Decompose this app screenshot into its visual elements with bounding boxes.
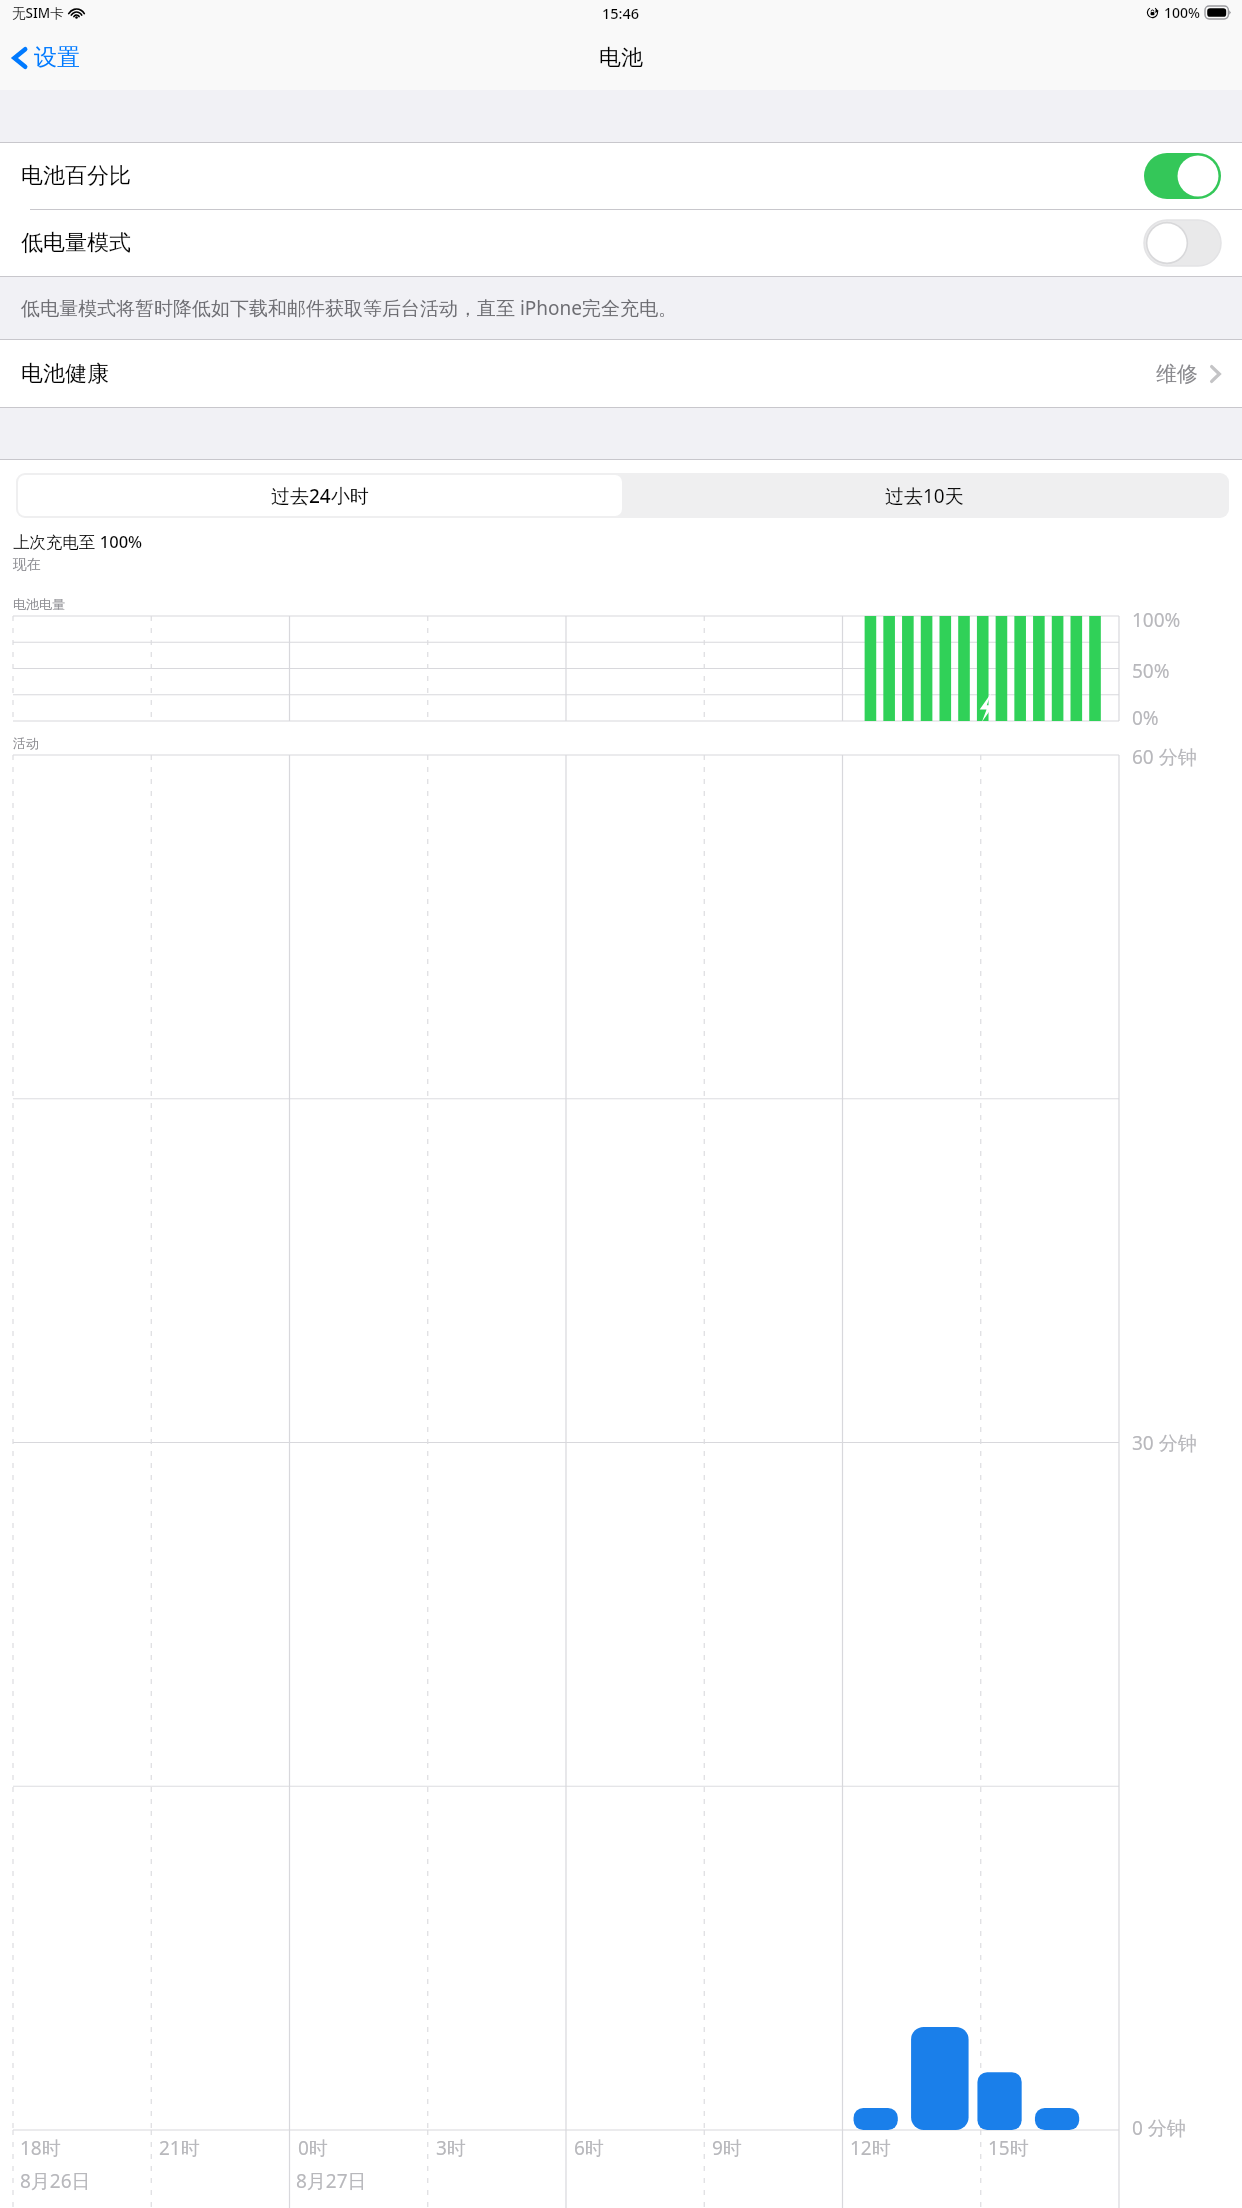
staticText: 12时 [850, 2135, 891, 2161]
staticText: 0 分钟 [1132, 2115, 1186, 2141]
staticText: 100% [1164, 3, 1200, 22]
staticText: 活动 [13, 735, 39, 751]
staticText: 100% [1132, 607, 1181, 633]
button[interactable]: 低电量模式 [0, 210, 1242, 276]
button[interactable]: 设置 [0, 37, 94, 78]
staticText: 低电量模式 [21, 229, 1144, 257]
staticText: 电池电量 [13, 596, 65, 612]
staticText: 30 分钟 [1132, 1430, 1197, 1456]
staticText: 设置 [34, 43, 80, 72]
staticText: 上次充电至 100% [13, 530, 143, 553]
staticText: 0时 [298, 2135, 328, 2161]
staticText: 维修 [1156, 361, 1198, 387]
staticText: 过去10天 [885, 483, 964, 509]
staticText: 低电量模式将暂时降低如下载和邮件获取等后台活动，直至 iPhone完全充电。 [21, 295, 678, 321]
staticText: 60 分钟 [1132, 744, 1197, 770]
staticText: 电池百分比 [21, 162, 1144, 190]
staticText: 现在 [13, 556, 41, 574]
staticText: 15:46 [602, 3, 640, 23]
staticText: 6时 [574, 2135, 604, 2161]
button[interactable]: 电池健康 [0, 340, 1242, 407]
button[interactable]: 电池百分比 [0, 143, 1242, 209]
button[interactable]: 过去24小时 [18, 475, 622, 516]
staticText: 15时 [988, 2135, 1029, 2161]
staticText: 无SIM卡 [12, 4, 64, 22]
staticText: 50% [1132, 658, 1170, 684]
staticText: 过去24小时 [271, 483, 369, 509]
button[interactable]: 过去10天 [622, 475, 1227, 516]
staticText: 9时 [712, 2135, 742, 2161]
staticText: 8月26日 [20, 2168, 91, 2194]
staticText: 电池 [599, 44, 643, 72]
staticText: 3时 [436, 2135, 466, 2161]
staticText: 18时 [20, 2135, 61, 2161]
staticText: 电池健康 [21, 360, 1156, 388]
staticText: 8月27日 [296, 2168, 367, 2194]
staticText: 0% [1132, 705, 1159, 731]
staticText: 21时 [159, 2135, 200, 2161]
